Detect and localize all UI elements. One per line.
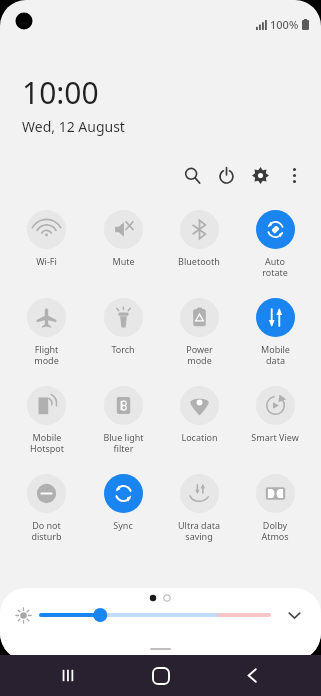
button[interactable]: Dolby Atmos bbox=[237, 466, 313, 554]
button[interactable]: Mute bbox=[85, 202, 161, 290]
button[interactable]: Expand bbox=[281, 602, 307, 628]
button[interactable]: Home bbox=[138, 655, 184, 696]
staticText: Mobile Hotspot bbox=[30, 431, 64, 454]
button[interactable]: Mobile data bbox=[237, 290, 313, 378]
staticText: Power mode bbox=[186, 343, 213, 366]
button[interactable]: Do not disturb bbox=[8, 466, 85, 554]
staticText: Flight mode bbox=[34, 343, 59, 366]
button[interactable]: Auto rotate bbox=[237, 202, 313, 290]
staticText: Dolby Atmos bbox=[261, 519, 289, 542]
button[interactable]: Blue light filter bbox=[85, 378, 161, 466]
staticText: Do not disturb bbox=[31, 519, 62, 542]
button[interactable]: Settings bbox=[243, 158, 277, 192]
staticText: Smart View bbox=[251, 431, 299, 443]
staticText: Ultra data saving bbox=[178, 519, 220, 542]
staticText: Wed, 12 August bbox=[22, 117, 125, 136]
button[interactable]: Sync bbox=[85, 466, 161, 554]
staticText: Location bbox=[181, 431, 218, 443]
button[interactable]: Bluetooth bbox=[161, 202, 237, 290]
button[interactable]: Wi-Fi bbox=[8, 202, 85, 290]
staticText: Mute bbox=[112, 255, 135, 267]
button[interactable]: More options bbox=[277, 158, 311, 192]
button[interactable]: Flight mode bbox=[8, 290, 85, 378]
button[interactable]: Smart View bbox=[237, 378, 313, 466]
button[interactable]: Ultra data saving bbox=[161, 466, 237, 554]
staticText: 100% bbox=[270, 17, 299, 32]
button[interactable]: Mobile Hotspot bbox=[8, 378, 85, 466]
button[interactable]: Brightness bbox=[41, 604, 269, 626]
staticText: Torch bbox=[111, 343, 135, 355]
button[interactable]: Location bbox=[161, 378, 237, 466]
button[interactable]: Torch bbox=[85, 290, 161, 378]
staticText: Sync bbox=[113, 519, 133, 531]
staticText: Wi-Fi bbox=[36, 255, 57, 267]
button[interactable]: Search bbox=[175, 158, 209, 192]
staticText: Blue light filter bbox=[103, 431, 144, 454]
button[interactable]: Power bbox=[209, 158, 243, 192]
button[interactable]: Recents bbox=[46, 655, 92, 696]
button[interactable]: Back bbox=[229, 655, 275, 696]
staticText: Auto rotate bbox=[262, 255, 288, 278]
button[interactable]: Power mode bbox=[161, 290, 237, 378]
staticText: Bluetooth bbox=[178, 255, 220, 267]
staticText: Mobile data bbox=[261, 343, 290, 366]
staticText: 10:00 bbox=[22, 72, 99, 113]
